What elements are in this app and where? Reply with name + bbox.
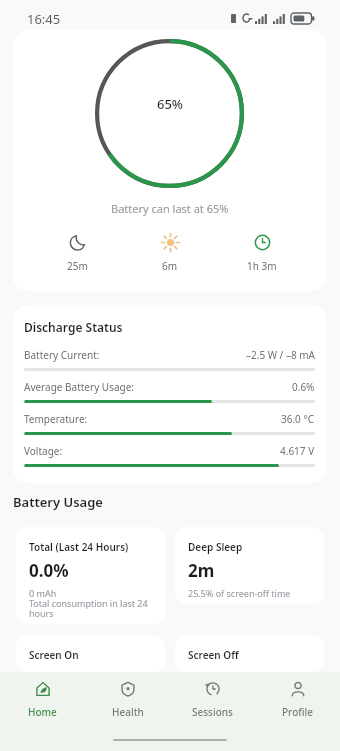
other: Home (35, 681, 51, 697)
staticText: Voltage: (24, 444, 63, 458)
button[interactable]: 1h 3m (216, 234, 308, 273)
button[interactable]: Total (Last 24 Hours) (16, 527, 165, 624)
staticText: 25m (67, 259, 88, 273)
staticText: 1h 3m (247, 259, 277, 273)
button[interactable]: Profile (255, 675, 340, 725)
staticText: Battery Usage (13, 493, 103, 511)
staticText: Screen On (29, 648, 79, 662)
staticText: 4.617 V (280, 444, 315, 458)
staticText: 25.5% of screen-off time (188, 587, 291, 599)
staticText: 0.0% (29, 559, 69, 582)
other: Profile (290, 681, 306, 697)
staticText: –2.5 W / –8 mA (246, 348, 315, 362)
other: Sessions (205, 681, 221, 697)
staticText: 0.6% (292, 380, 315, 394)
staticText: Temperature: (24, 412, 88, 426)
button[interactable]: Home (0, 675, 85, 725)
button[interactable]: Screen On (16, 635, 165, 672)
button[interactable]: Screen Off (175, 635, 324, 672)
staticText: Average Battery Usage: (24, 380, 135, 394)
staticText: Deep Sleep (188, 540, 243, 554)
button[interactable]: Deep Sleep (175, 527, 324, 604)
staticText: 0 mAh Total consumption in last 24 hours (29, 587, 155, 619)
button[interactable]: Sessions (170, 675, 255, 725)
staticText: Sessions (192, 705, 233, 719)
button[interactable]: Health (85, 675, 170, 725)
staticText: Discharge Status (24, 319, 123, 335)
button[interactable]: 25m (31, 234, 124, 273)
staticText: 16:45 (27, 10, 61, 28)
staticText: 6m (162, 259, 178, 273)
staticText: Total (Last 24 Hours) (29, 540, 129, 554)
staticText: Battery can last at 65% (111, 201, 229, 216)
staticText: Screen Off (188, 648, 239, 662)
staticText: 65% (157, 95, 183, 113)
staticText: Battery Current: (24, 348, 100, 362)
staticText: Profile (282, 705, 313, 719)
button[interactable]: 6m (124, 234, 216, 273)
staticText: Home (28, 705, 57, 719)
staticText: 36.0 °C (281, 412, 315, 426)
other: Health (120, 681, 136, 697)
staticText: 2m (188, 559, 215, 582)
staticText: Health (112, 705, 144, 719)
